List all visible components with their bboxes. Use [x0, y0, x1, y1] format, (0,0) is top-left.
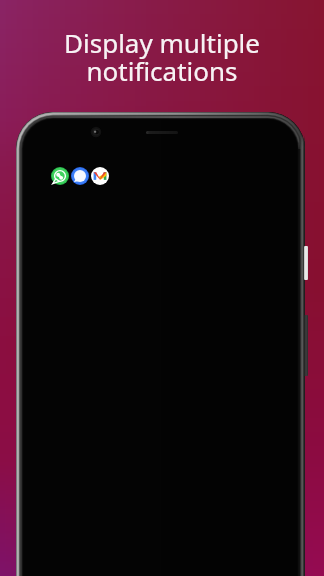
button[interactable]: Power button [304, 246, 308, 280]
button[interactable]: Gmail notification [91, 167, 109, 185]
button[interactable]: Volume buttons [304, 315, 308, 376]
button[interactable]: WhatsApp notification [51, 167, 69, 185]
button[interactable]: Signal notification [71, 167, 89, 185]
staticText: Display multiple notifications [64, 25, 260, 89]
